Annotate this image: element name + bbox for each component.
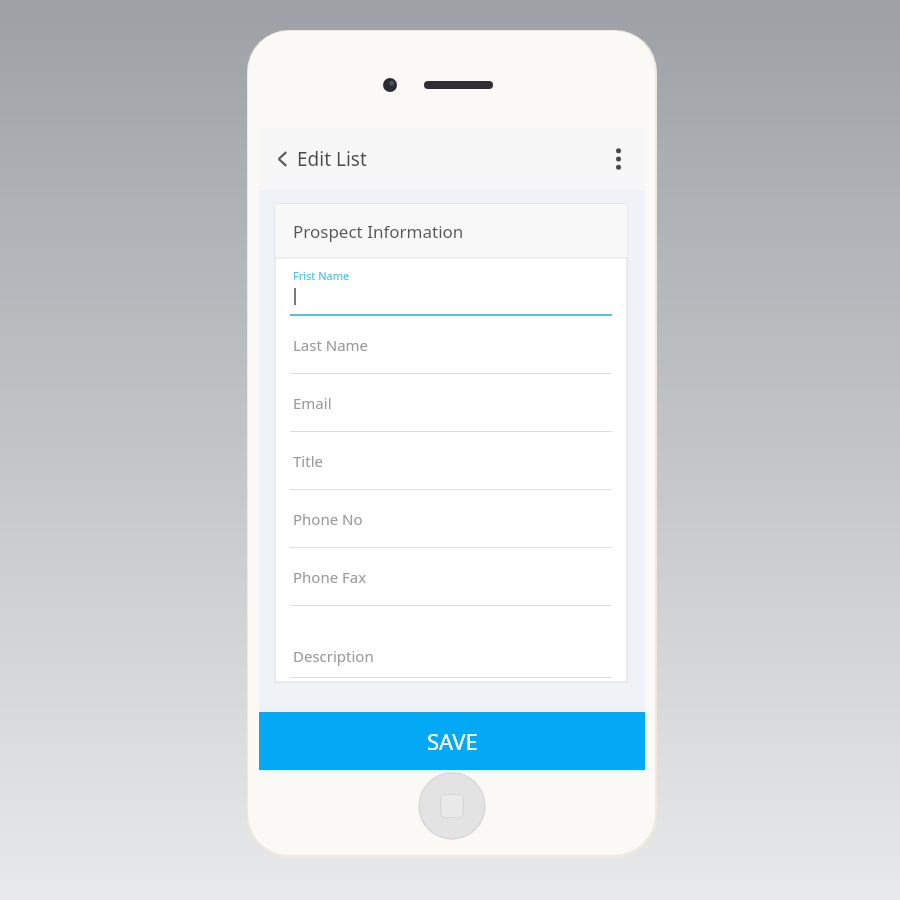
button[interactable]: Phone Fax	[275, 548, 627, 606]
other: Home	[440, 794, 464, 818]
button[interactable]: More options	[603, 144, 633, 174]
button[interactable]: Back	[269, 145, 367, 173]
staticText: Email	[293, 393, 332, 413]
staticText: SAVE	[427, 726, 478, 756]
button[interactable]: Last Name	[275, 316, 627, 374]
button[interactable]: SAVE	[259, 712, 645, 770]
other: Back	[269, 145, 297, 173]
staticText: Description	[293, 646, 374, 666]
button[interactable]: Email	[275, 374, 627, 432]
button[interactable]: Title	[275, 432, 627, 490]
staticText: Edit List	[297, 146, 367, 172]
staticText: Last Name	[293, 335, 369, 355]
staticText: Frist Name	[293, 268, 350, 283]
staticText: Phone Fax	[293, 567, 367, 587]
staticText: Prospect Information	[293, 220, 464, 243]
button[interactable]: Description	[275, 606, 627, 678]
button[interactable]: Frist Name	[275, 259, 627, 316]
staticText: Phone No	[293, 509, 363, 529]
button[interactable]: Phone No	[275, 490, 627, 548]
staticText: Title	[293, 451, 323, 471]
